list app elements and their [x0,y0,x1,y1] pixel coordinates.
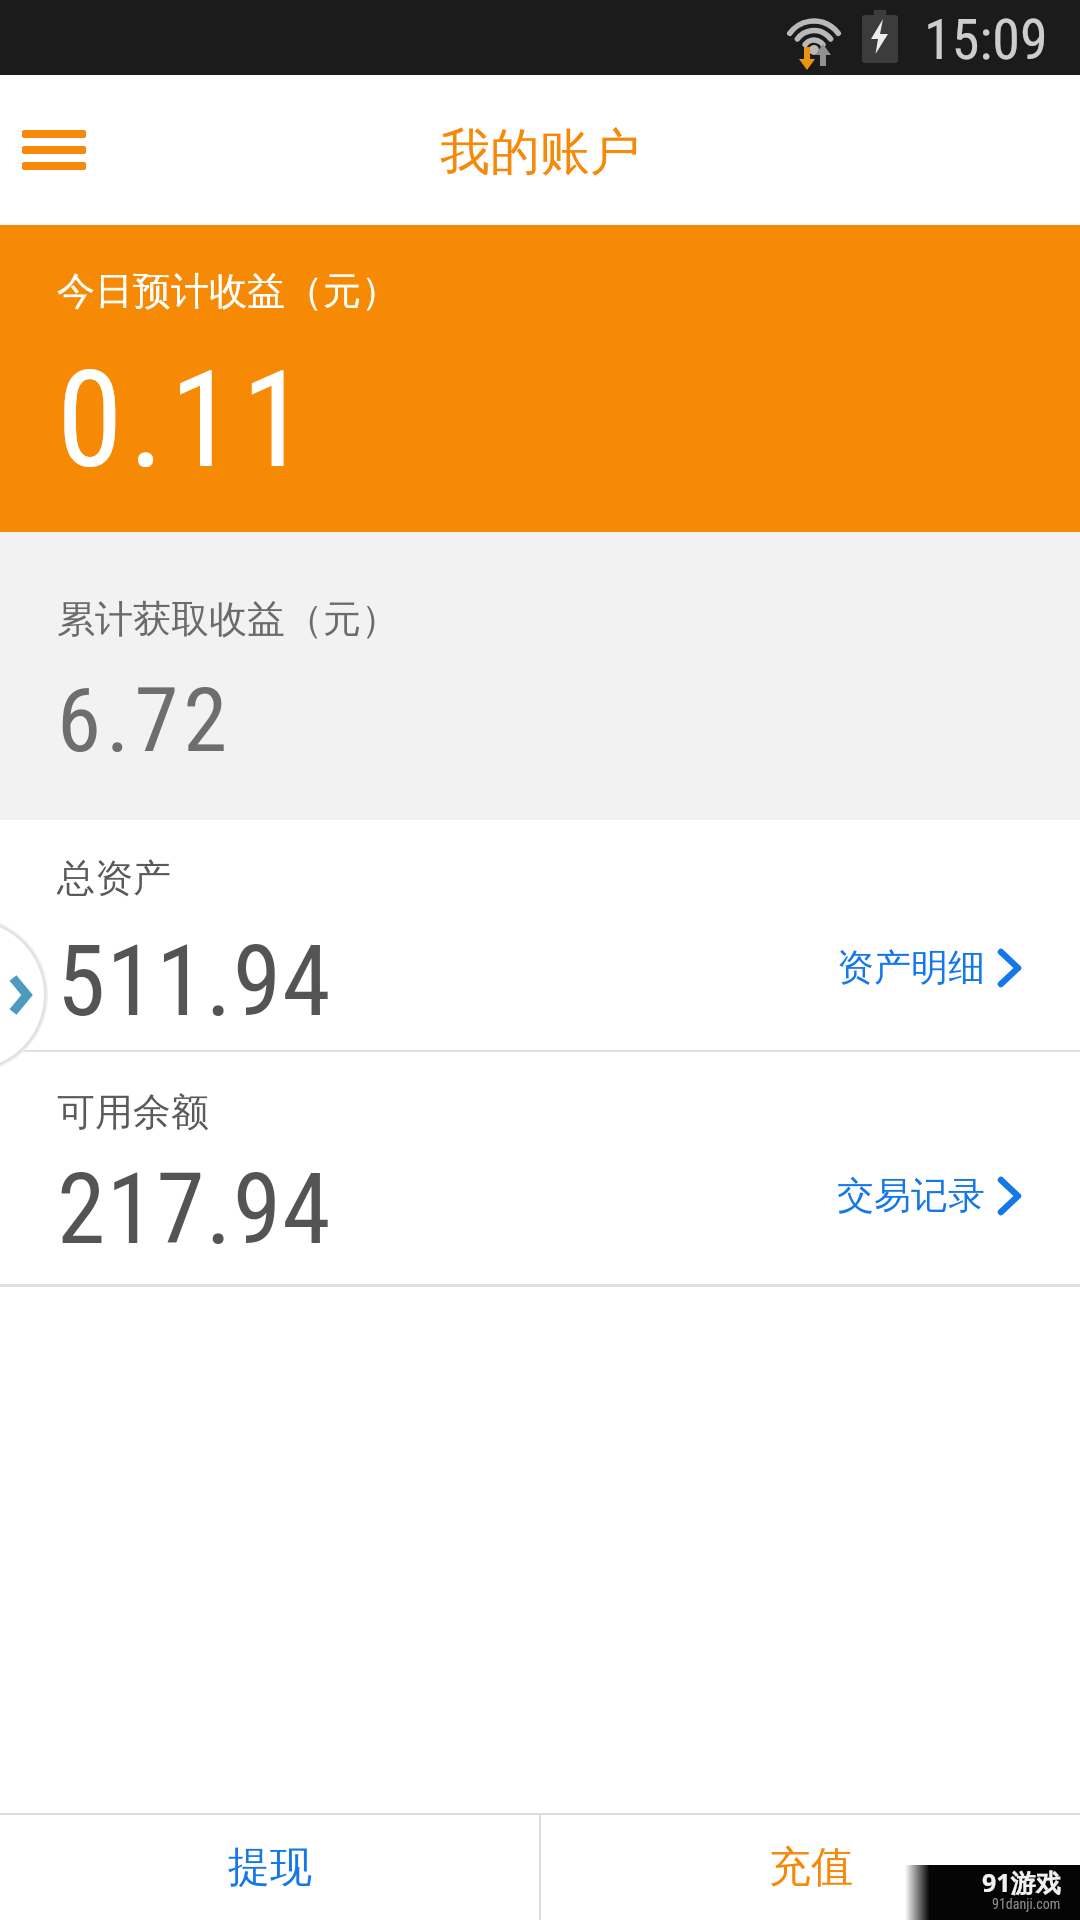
staticText: 总资产 [57,854,171,902]
button[interactable] [0,917,48,1073]
staticText: 91游戏 [982,1865,1061,1899]
staticText: 511.94 [57,924,332,1039]
staticText: 我的账户 [440,121,640,184]
staticText: 交易记录 [837,1172,985,1219]
button[interactable]: 交易记录 [837,1172,1020,1219]
staticText: 充值 [769,1841,853,1894]
staticText: 15:09 [924,7,1048,73]
staticText: 资产明细 [837,944,985,991]
staticText: 91danji.com [992,1896,1061,1912]
button[interactable]: 资产明细 [837,944,1020,991]
button[interactable] [22,130,86,170]
staticText: 6.72 [57,668,233,772]
staticText: 今日预计收益（元） [57,267,399,315]
staticText: 提现 [228,1841,312,1894]
staticText: 可用余额 [57,1088,209,1136]
button[interactable]: 提现 [0,1815,539,1920]
staticText: 217.94 [57,1152,332,1267]
staticText: 累计获取收益（元） [57,595,399,643]
staticText: 0.11 [57,343,314,499]
button[interactable]: 充值 [541,1815,1080,1920]
